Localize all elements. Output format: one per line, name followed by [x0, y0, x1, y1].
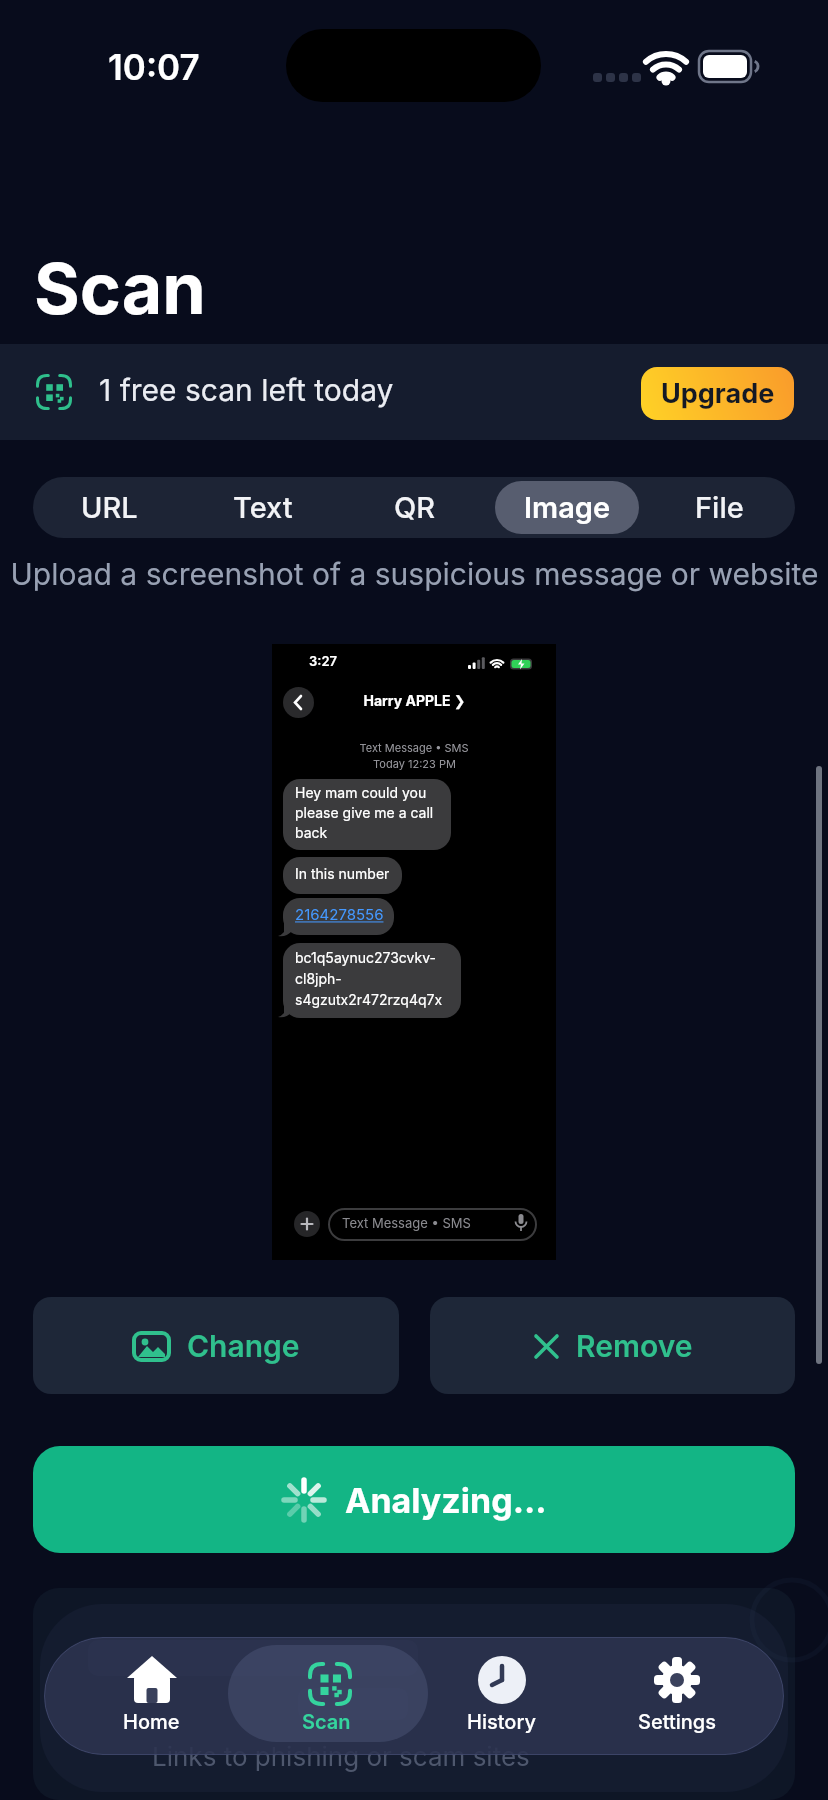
staticText: QR: [394, 490, 436, 525]
staticText: Text Message • SMS: [342, 1215, 471, 1231]
button[interactable]: Text: [186, 477, 339, 538]
staticText: Settings: [638, 1710, 716, 1734]
staticText: Home: [123, 1710, 180, 1734]
button[interactable]: Analyzing...: [33, 1446, 795, 1553]
button[interactable]: File: [643, 477, 795, 538]
button[interactable]: QR: [339, 477, 491, 538]
staticText: Text Message • SMS: [359, 741, 469, 754]
button[interactable]: Upgrade: [641, 367, 794, 420]
button[interactable]: Scan: [239, 1637, 414, 1755]
staticText: Hey mam could you please give me a call …: [295, 784, 434, 841]
button[interactable]: Remove: [430, 1297, 795, 1394]
staticText: Upload a screenshot of a suspicious mess…: [10, 556, 819, 592]
staticText: Analyzing...: [345, 1480, 547, 1521]
button[interactable]: Settings: [589, 1637, 764, 1755]
staticText: Text: [233, 490, 293, 525]
staticText: 2164278556: [295, 905, 384, 923]
staticText: Scan: [302, 1710, 351, 1734]
staticText: Harry APPLE ❯: [363, 692, 466, 709]
button[interactable]: Home: [64, 1637, 239, 1755]
staticText: bc1q5aynuc273cvkv- cl8jph- s4gzutx2r472r…: [295, 949, 443, 1008]
staticText: Links to phishing or scam sites: [152, 1741, 530, 1772]
button[interactable]: Image: [491, 477, 643, 538]
staticText: In this number: [295, 865, 390, 882]
staticText: Today 12:23 PM: [373, 757, 456, 770]
button[interactable]: Change: [33, 1297, 399, 1394]
staticText: URL: [81, 490, 138, 525]
staticText: History: [467, 1710, 536, 1734]
staticText: Scan: [34, 246, 206, 331]
staticText: 3:27: [309, 653, 338, 669]
staticText: 1 free scan left today: [99, 372, 394, 408]
staticText: File: [695, 490, 744, 525]
staticText: Remove: [576, 1328, 693, 1364]
staticText: Change: [187, 1328, 300, 1364]
staticText: Image: [524, 490, 611, 525]
staticText: 10:07: [108, 46, 200, 88]
button[interactable]: History: [414, 1637, 589, 1755]
staticText: Upgrade: [661, 377, 775, 410]
button[interactable]: URL: [33, 477, 186, 538]
